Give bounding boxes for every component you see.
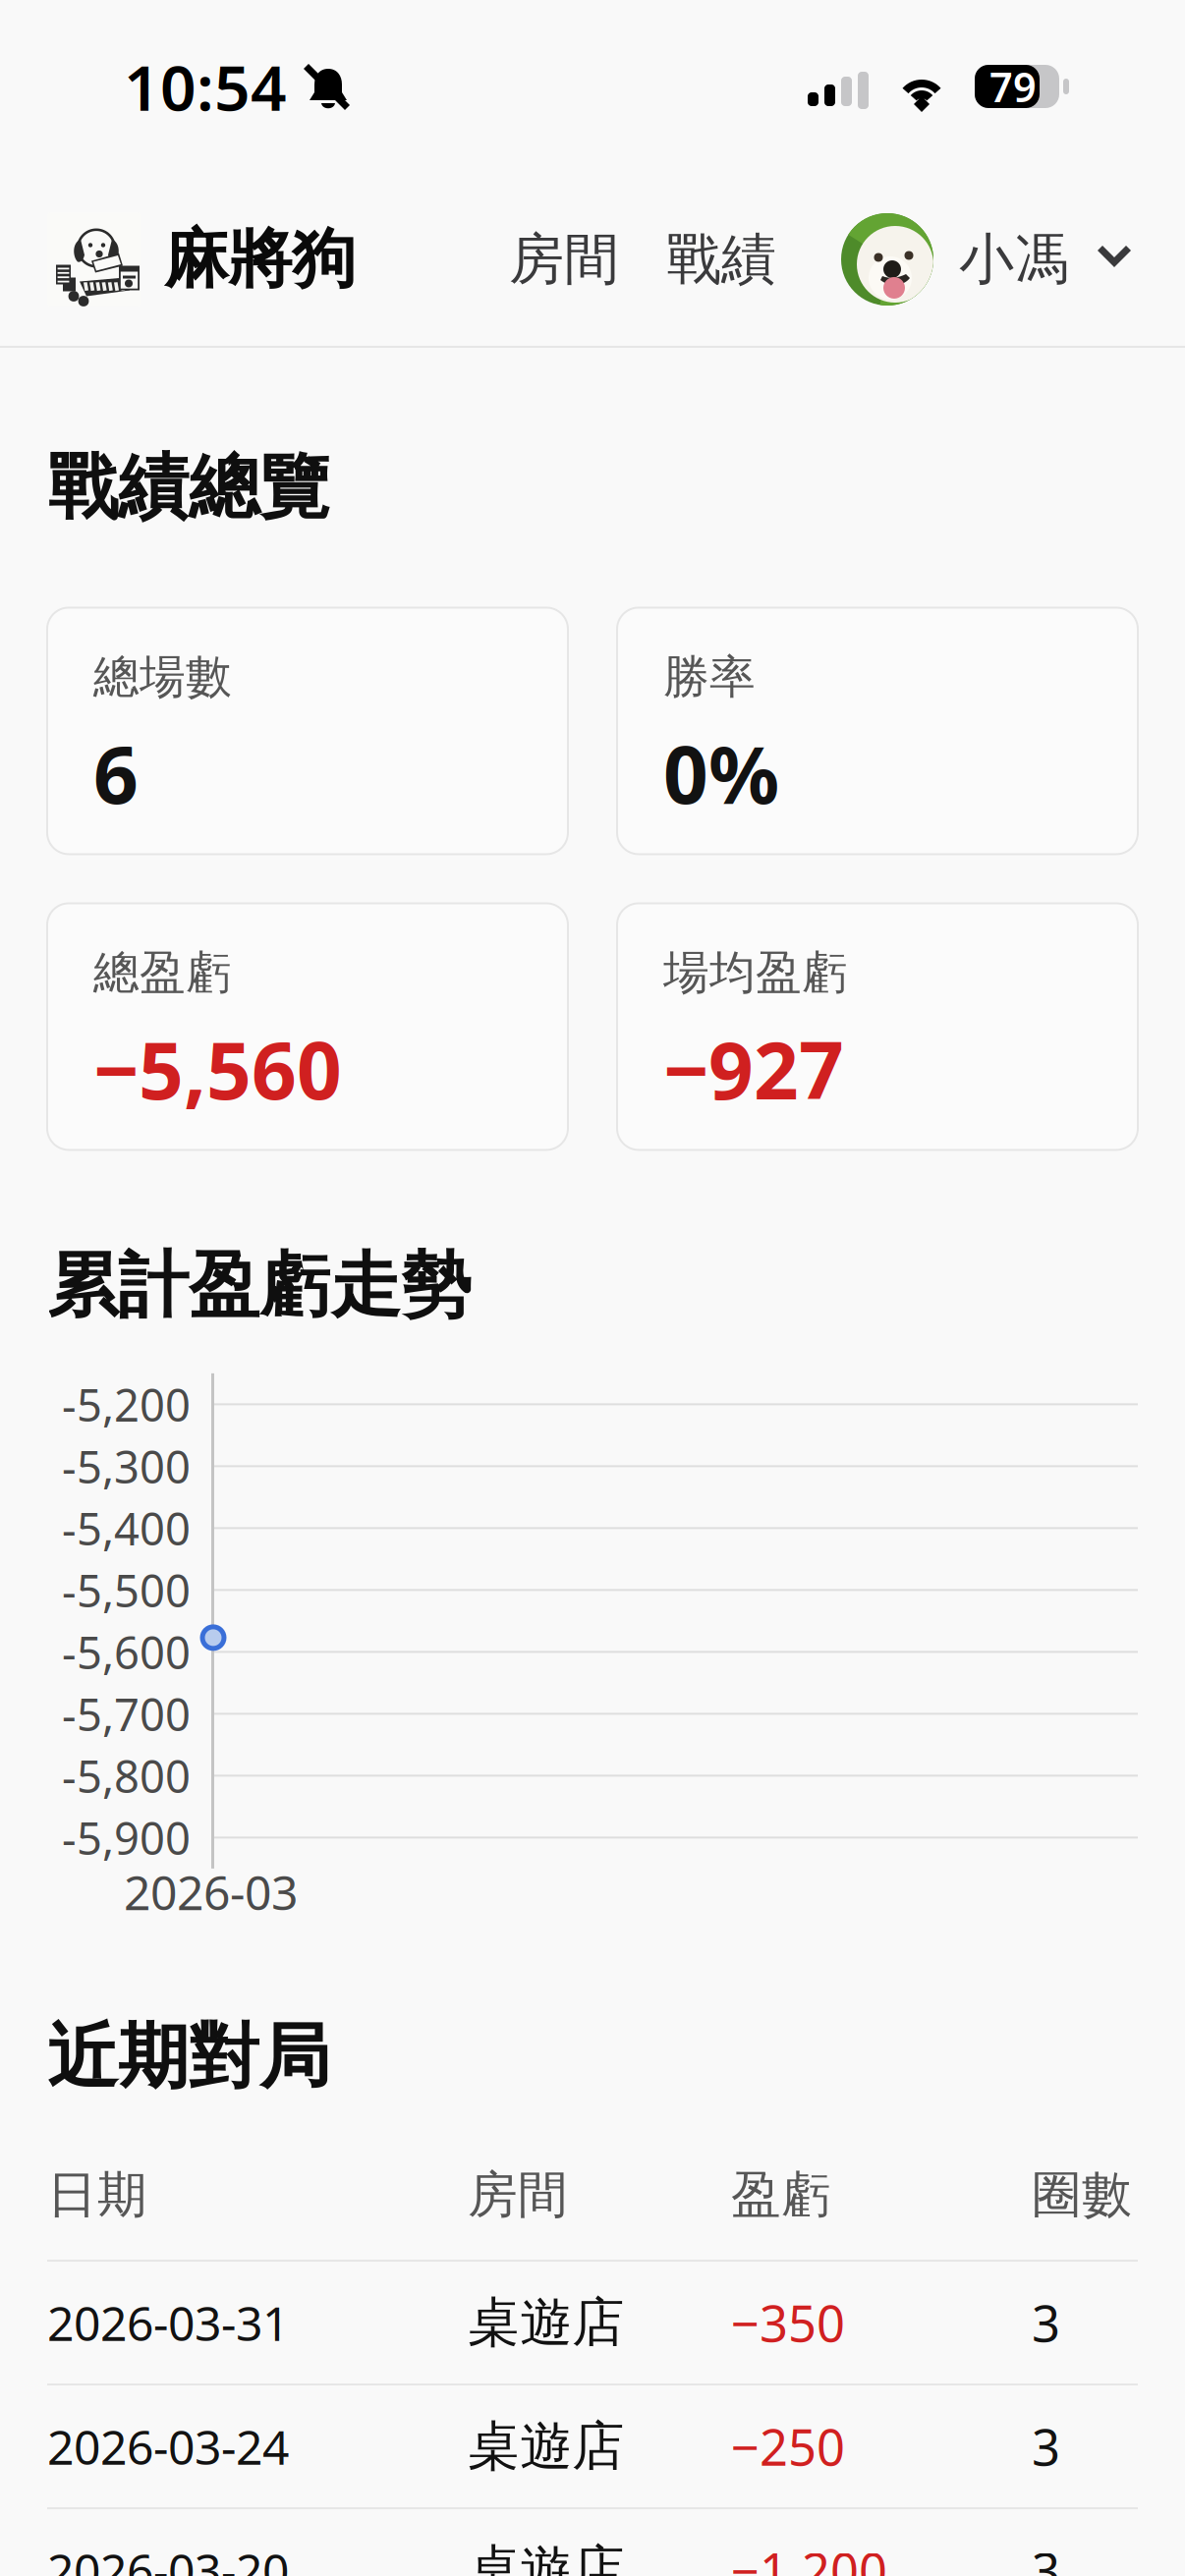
staticText: 79	[989, 60, 1037, 113]
staticText: 麻將狗	[164, 220, 356, 299]
staticText: -5,200	[62, 1375, 191, 1434]
staticText: -5,900	[62, 1808, 191, 1867]
staticText: 勝率	[663, 649, 756, 705]
staticText: 近期對局	[47, 2014, 330, 2100]
staticText: -5,400	[62, 1499, 191, 1558]
staticText: -5,500	[62, 1560, 191, 1620]
staticText: 2026-03	[124, 1861, 298, 1923]
button[interactable]: 房間	[401, 226, 637, 293]
staticText: 0%	[663, 721, 779, 825]
staticText: 房間	[509, 226, 619, 293]
staticText: 3	[1032, 2290, 1060, 2356]
staticText: 累計盈虧走勢	[47, 1242, 472, 1329]
staticText: 總場數	[93, 649, 232, 705]
staticText: -5,300	[62, 1437, 191, 1496]
staticText: 6	[93, 721, 139, 825]
staticText: 2026-03-31	[47, 2291, 289, 2354]
staticText: 3	[1032, 2537, 1060, 2576]
staticText: -5,600	[62, 1622, 191, 1681]
staticText: 盈虧	[731, 2164, 831, 2225]
staticText: −927	[663, 1017, 844, 1121]
staticText: 桌遊店	[468, 2414, 624, 2479]
staticText: 圈數	[1032, 2164, 1132, 2225]
staticText: 小馮	[959, 226, 1069, 293]
staticText: 桌遊店	[468, 2290, 624, 2355]
staticText: −5,560	[93, 1017, 342, 1121]
staticText: 2026-03-24	[47, 2415, 289, 2478]
staticText: 房間	[468, 2164, 568, 2225]
button[interactable]: 戰績	[637, 226, 794, 293]
staticText: −1,200	[731, 2537, 887, 2576]
staticText: 總盈虧	[93, 945, 232, 1001]
staticText: -5,700	[62, 1684, 191, 1743]
staticText: 2026-03-20	[47, 2539, 289, 2576]
staticText: 3	[1032, 2413, 1060, 2479]
staticText: 桌遊店	[468, 2538, 624, 2576]
button[interactable]: 麻將狗	[47, 213, 401, 306]
staticText: 10:54	[124, 45, 287, 128]
staticText: 場均盈虧	[663, 945, 848, 1001]
staticText: -5,800	[62, 1746, 191, 1805]
staticText: −250	[731, 2413, 845, 2479]
staticText: 日期	[47, 2164, 147, 2225]
staticText: 戰績總覽	[47, 444, 330, 531]
staticText: 戰績	[666, 226, 776, 293]
staticText: −350	[731, 2290, 845, 2356]
button[interactable]: 小馮	[841, 213, 1138, 306]
